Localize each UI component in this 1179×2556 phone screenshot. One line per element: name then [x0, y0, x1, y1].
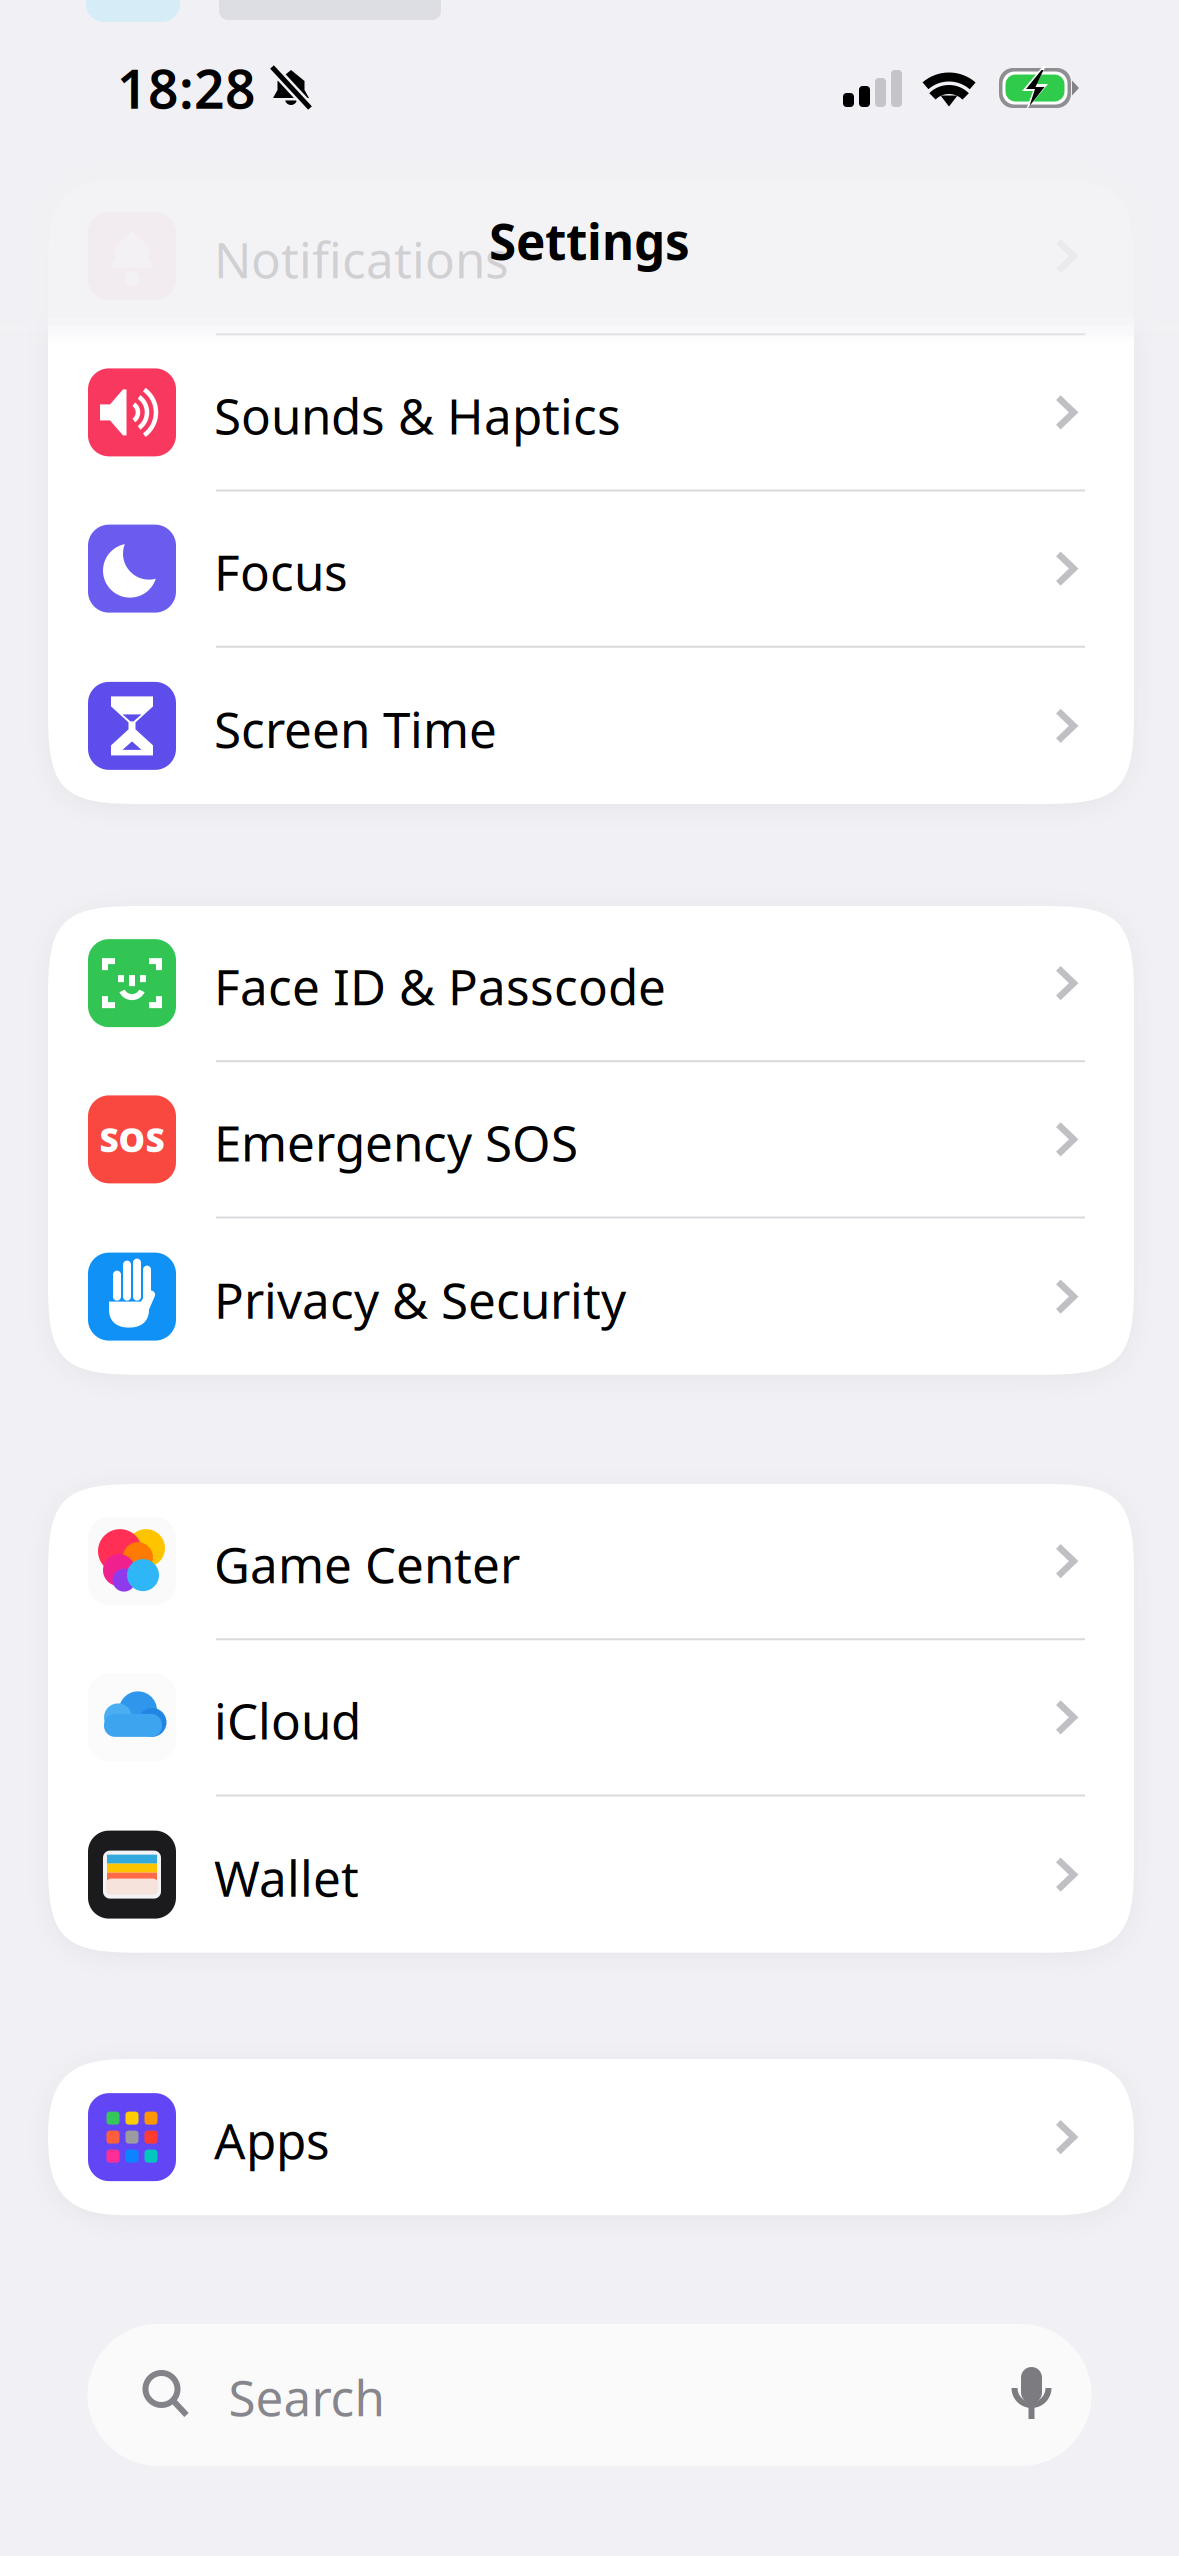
button[interactable]: Game Center: [48, 1484, 1134, 1640]
button[interactable]: SOS: [48, 1062, 1134, 1218]
button[interactable]: Search: [87, 2324, 1091, 2466]
staticText: Focus: [214, 539, 348, 604]
staticText: 18:28: [117, 53, 256, 123]
staticText: Search: [228, 2364, 384, 2430]
staticText: Wallet: [214, 1845, 359, 1910]
staticText: Screen Time: [214, 696, 497, 762]
button[interactable]: Focus: [48, 491, 1134, 648]
button[interactable]: iCloud: [48, 1640, 1134, 1796]
button[interactable]: Screen Time: [48, 648, 1134, 804]
staticText: SOS: [99, 1117, 164, 1161]
button[interactable]: Notifications: [48, 179, 1134, 335]
staticText: Face ID & Passcode: [214, 953, 666, 1019]
button[interactable]: Sounds & Haptics: [48, 335, 1134, 491]
staticText: Emergency SOS: [214, 1110, 578, 1175]
staticText: Sounds & Haptics: [214, 383, 621, 448]
staticText: Game Center: [214, 1531, 520, 1597]
staticText: Privacy & Security: [214, 1267, 626, 1332]
staticText: Apps: [214, 2107, 330, 2173]
button[interactable]: Privacy & Security: [48, 1218, 1134, 1375]
button[interactable]: Face ID & Passcode: [48, 906, 1134, 1062]
button[interactable]: Apps: [48, 2059, 1134, 2215]
staticText: Settings: [489, 208, 690, 273]
staticText: Notifications: [214, 226, 509, 292]
staticText: iCloud: [214, 1688, 361, 1753]
button[interactable]: Wallet: [48, 1796, 1134, 1953]
